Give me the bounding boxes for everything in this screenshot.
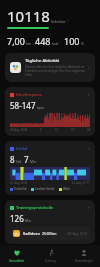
button[interactable]: Schlaf [5, 141, 95, 195]
staticText: 18 [71, 128, 74, 132]
button[interactable]: Herzfrequenz [5, 87, 95, 136]
staticText: 8 [10, 154, 15, 165]
staticText: Trainingsprotokolle [16, 205, 54, 210]
staticText: Tiefschlaf [14, 187, 27, 191]
button[interactable]: Tägliche Aktivität [5, 53, 95, 82]
staticText: Tägliche Aktivität [25, 58, 60, 64]
staticText: Schlaf [16, 146, 28, 151]
staticText: › [88, 91, 90, 98]
staticText: Leichter Schlaf [35, 187, 55, 191]
staticText: Wach [63, 187, 71, 191]
button[interactable]: Trainingsprotokolle [5, 200, 95, 244]
staticText: Training [45, 259, 56, 263]
button[interactable]: Einstellungen [67, 245, 100, 267]
staticText: › [88, 64, 90, 71]
staticText: 24. Aug. 00:06 [10, 128, 28, 132]
staticText: Einstellungen [75, 259, 93, 263]
staticText: kcal [52, 41, 59, 46]
staticText: Min. [25, 219, 32, 223]
button[interactable]: Training [34, 245, 67, 267]
staticText: Radfahren [23, 231, 40, 236]
staticText: 6 [40, 128, 42, 132]
staticText: km [26, 41, 32, 46]
staticText: › [88, 204, 90, 211]
staticText: 25. Aug. 23:00 [10, 181, 28, 185]
staticText: 10118 [7, 6, 50, 26]
staticText: % [81, 41, 84, 46]
staticText: › [88, 145, 90, 152]
button[interactable]: Radfahren [10, 227, 90, 240]
staticText: Herzfrequenz [16, 92, 42, 97]
staticText: 25:00 km [42, 231, 57, 236]
staticText: 26. Aug. 13:10 [68, 232, 87, 236]
staticText: 100 [64, 35, 80, 47]
staticText: 7 [24, 154, 29, 165]
staticText: 58-147 [10, 100, 36, 111]
staticText: Std. [16, 160, 22, 164]
staticText: 24 [87, 128, 90, 132]
staticText: 448 [35, 35, 51, 47]
staticText: 7,00 [7, 35, 25, 47]
staticText: bpm [37, 106, 44, 110]
staticText: 12 [55, 128, 58, 132]
staticText: 126 [10, 213, 24, 224]
staticText: Überprüfen Sie Ihre tägliche Aktivität i… [25, 65, 86, 77]
staticText: › [67, 17, 69, 24]
staticText: Min. [30, 160, 37, 164]
staticText: Gesundheit [9, 259, 25, 263]
button[interactable]: Gesundheit [0, 245, 34, 267]
staticText: 26. Aug. 07:51 [72, 181, 90, 185]
staticText: Schritte [51, 19, 66, 24]
